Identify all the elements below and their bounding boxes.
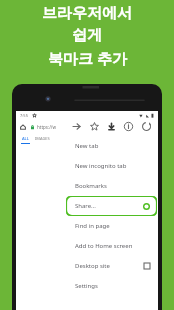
button[interactable]: New tab [65,136,158,156]
staticText: IMAGES [35,136,50,141]
staticText: New incognito tab [75,162,127,170]
staticText: ALL [22,136,29,141]
staticText: Settings [75,282,98,290]
button[interactable]: Share... [66,196,157,216]
button[interactable]: Download [106,121,117,132]
staticText: 북마크 추가 [48,48,127,68]
button[interactable]: New incognito tab [65,156,158,176]
staticText: https://w [37,124,57,130]
staticText: Share... [75,202,96,210]
staticText: Bookmarks [75,182,107,190]
staticText: Desktop site [75,262,110,270]
staticText: New tab [75,142,99,150]
button[interactable]: Find in page [65,216,158,236]
staticText: 7:55 [20,113,28,118]
staticText: 쉽게 [72,26,102,45]
button[interactable]: Bookmark [89,121,100,132]
staticText: Add to Home screen [75,242,133,250]
button[interactable]: Forward [71,121,82,132]
button[interactable]: Add to Home screen [65,236,158,256]
button[interactable]: Desktop site [65,256,158,276]
button[interactable]: Refresh [141,121,152,132]
button[interactable]: Settings [65,276,158,296]
button[interactable]: Bookmarks [65,176,158,196]
staticText: Find in page [75,222,110,230]
button[interactable]: Page info [123,121,134,132]
staticText: 브라우저에서 [42,4,132,23]
